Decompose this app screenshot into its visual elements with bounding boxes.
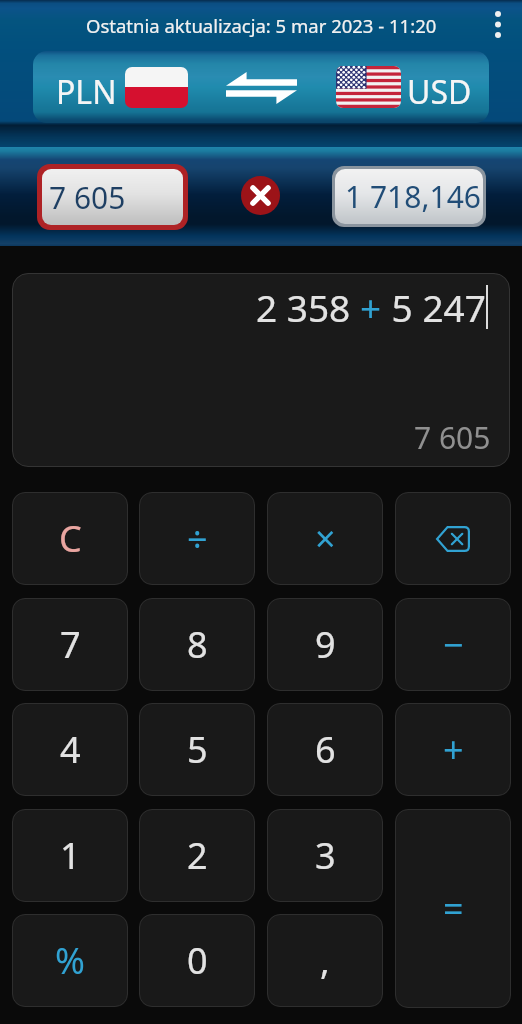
staticText: Ostatnia aktualizacja: 5 mar 2023 - 11:2… xyxy=(86,13,437,38)
staticText: % xyxy=(55,936,85,985)
button[interactable]: 7 xyxy=(12,598,128,691)
button[interactable]: = xyxy=(395,809,511,1008)
button[interactable]: 2 xyxy=(139,809,255,902)
staticText: 3 xyxy=(315,831,336,880)
staticText: = xyxy=(443,884,464,933)
button[interactable]: − xyxy=(395,598,511,691)
staticText: ÷ xyxy=(187,514,208,563)
button[interactable]: 5 xyxy=(139,703,255,796)
button[interactable]: 3 xyxy=(267,809,383,902)
button[interactable]: 4 xyxy=(12,703,128,796)
staticText: USD xyxy=(407,70,472,114)
button[interactable]: Backspace xyxy=(395,492,511,585)
button[interactable]: 7 605 xyxy=(42,169,183,225)
button[interactable]: 6 xyxy=(267,703,383,796)
staticText: 5 247 xyxy=(382,282,486,332)
staticText: 8 xyxy=(187,620,208,669)
button[interactable]: 8 xyxy=(139,598,255,691)
staticText: 0 xyxy=(187,936,208,985)
button[interactable]: + xyxy=(395,703,511,796)
button[interactable]: ÷ xyxy=(139,492,255,585)
button[interactable]: More options xyxy=(476,2,520,46)
staticText: 7 605 xyxy=(414,417,491,458)
staticText: C xyxy=(59,514,82,563)
button[interactable]: × xyxy=(267,492,383,585)
staticText: + xyxy=(360,282,382,332)
button[interactable]: % xyxy=(12,914,128,1007)
staticText: 2 358 xyxy=(256,282,360,332)
staticText: + xyxy=(443,725,464,774)
staticText: 5 xyxy=(187,725,208,774)
staticText: 1 718,146 xyxy=(345,176,481,217)
staticText: × xyxy=(315,514,336,563)
staticText: 7 605 xyxy=(49,177,126,218)
staticText: 1 xyxy=(60,831,81,880)
button[interactable]: C xyxy=(12,492,128,585)
staticText: 7 xyxy=(60,620,81,669)
button[interactable]: 1 718,146 xyxy=(335,169,483,224)
button[interactable]: PLN xyxy=(33,51,489,123)
button[interactable]: 0 xyxy=(139,914,255,1007)
staticText: , xyxy=(320,936,330,985)
staticText: 4 xyxy=(60,725,81,774)
staticText: 9 xyxy=(315,620,336,669)
button[interactable]: 9 xyxy=(267,598,383,691)
staticText: PLN xyxy=(56,70,117,114)
button[interactable]: 2 358 xyxy=(12,273,510,467)
button[interactable]: , xyxy=(267,914,383,1007)
button[interactable]: Clear xyxy=(241,176,280,215)
staticText: − xyxy=(443,620,464,669)
button[interactable]: 1 xyxy=(12,809,128,902)
button[interactable]: Swap currencies xyxy=(224,69,298,107)
staticText: 6 xyxy=(315,725,336,774)
staticText: 2 xyxy=(187,831,208,880)
